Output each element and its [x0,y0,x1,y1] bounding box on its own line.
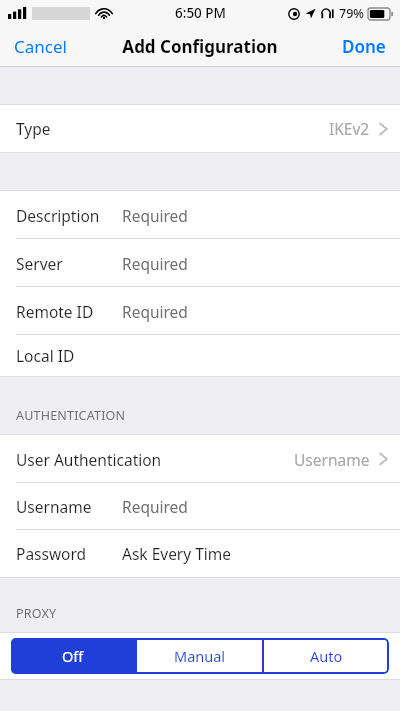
button[interactable]: Remote ID [0,287,400,335]
staticText: Cancel [14,35,67,58]
staticText: Password [16,543,122,564]
button[interactable]: Auto [264,638,389,674]
button[interactable]: Off [11,638,135,674]
staticText: Username [294,449,370,470]
button[interactable]: Manual [137,638,262,674]
staticText: Local ID [16,345,122,366]
staticText: Auto [310,646,343,666]
button[interactable]: Server [0,239,400,287]
staticText: Ask Every Time [122,543,232,564]
button[interactable]: Username [0,483,400,530]
button[interactable]: Local ID [0,335,400,376]
staticText: AUTHENTICATION [16,407,126,424]
staticText: Add Configuration [122,35,278,58]
button[interactable]: User Authentication [0,435,400,483]
button[interactable]: Cancel [0,29,81,64]
staticText: Done [342,35,386,58]
staticText: Server [16,253,122,274]
button[interactable]: Done [328,29,400,64]
button[interactable]: Description [0,191,400,239]
staticText: Description [16,205,122,226]
staticText: User Authentication [16,449,162,470]
staticText: 6:50 PM [175,4,226,22]
staticText: Required [122,253,188,274]
button[interactable]: Type [0,105,400,152]
button[interactable]: Password [0,530,400,577]
staticText: IKEv2 [329,118,370,139]
staticText: Type [16,118,51,139]
staticText: Required [122,205,188,226]
staticText: Manual [174,646,226,666]
staticText: Remote ID [16,301,122,322]
staticText: Required [122,301,188,322]
staticText: Required [122,496,188,517]
staticText: Username [16,496,122,517]
staticText: 79% [339,5,364,22]
staticText: PROXY [16,605,57,622]
staticText: Off [62,646,84,666]
